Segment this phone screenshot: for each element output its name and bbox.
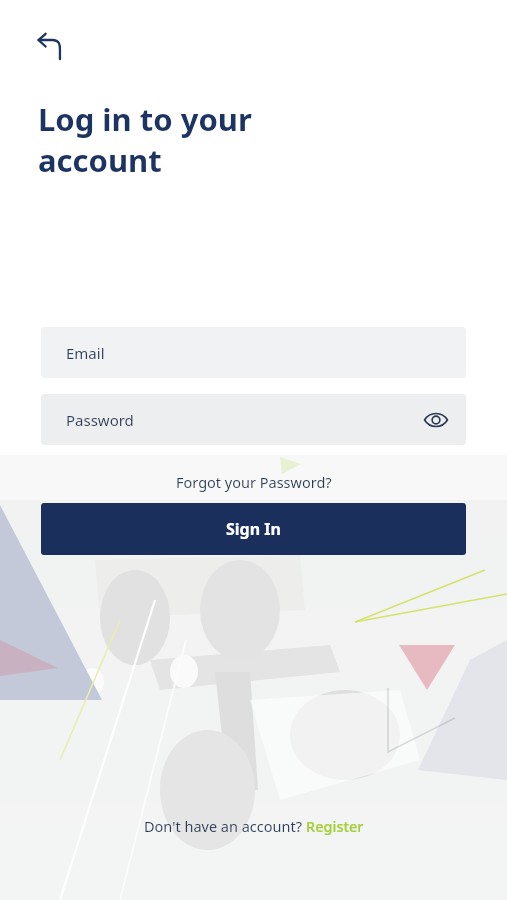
button[interactable]: Email: [41, 327, 466, 378]
staticText: Log in to your account: [38, 98, 252, 181]
button[interactable]: Sign In: [41, 503, 466, 555]
button[interactable]: Show password: [419, 403, 453, 437]
staticText: Don't have an account?: [144, 816, 306, 836]
staticText: Password: [66, 410, 134, 430]
staticText: Sign In: [226, 518, 281, 540]
button[interactable]: Register: [306, 816, 364, 836]
button[interactable]: Back: [28, 24, 72, 68]
button[interactable]: Forgot your Password?: [166, 469, 342, 495]
staticText: Email: [66, 343, 105, 363]
button[interactable]: Password: [41, 394, 466, 445]
